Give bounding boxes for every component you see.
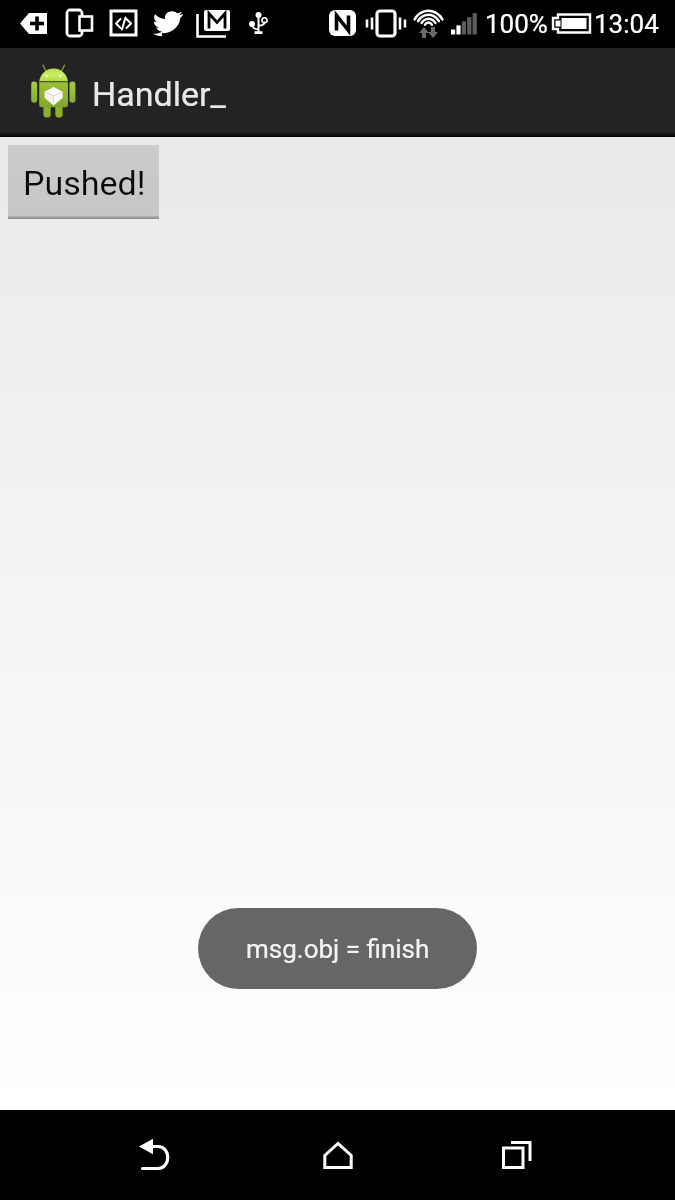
staticText: Pushed! bbox=[23, 163, 146, 203]
button[interactable]: Recent apps bbox=[477, 1110, 557, 1200]
button[interactable]: Handler_ bbox=[0, 48, 240, 137]
staticText: Handler_ bbox=[92, 74, 226, 114]
staticText: 13:04 bbox=[594, 9, 659, 39]
staticText: msg.obj = finish bbox=[246, 934, 430, 964]
button[interactable]: Back bbox=[117, 1110, 197, 1200]
button[interactable]: Home bbox=[297, 1110, 378, 1200]
button[interactable]: Pushed! bbox=[8, 145, 159, 219]
staticText: 100% bbox=[485, 9, 548, 39]
